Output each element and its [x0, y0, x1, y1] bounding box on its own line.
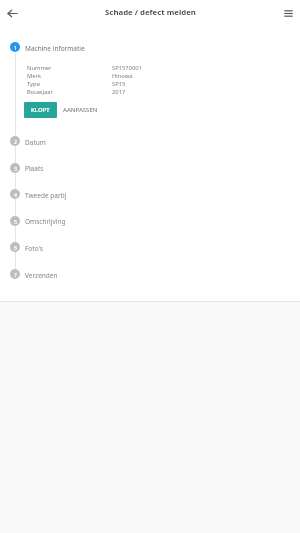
button[interactable]: Menu: [276, 1, 300, 25]
button[interactable]: [0, 132, 300, 150]
staticText: 7: [14, 271, 17, 278]
staticText: Nummer: [27, 64, 112, 72]
staticText: Plaats: [25, 164, 44, 173]
staticText: 2017: [112, 88, 126, 96]
staticText: 6: [14, 244, 17, 251]
staticText: Bouwjaar: [27, 88, 112, 96]
staticText: Hinowa: [112, 72, 133, 80]
staticText: Foto's: [25, 244, 43, 253]
button[interactable]: [0, 212, 300, 230]
staticText: 4: [14, 191, 17, 198]
button[interactable]: [0, 159, 300, 177]
staticText: Machine informatie: [25, 44, 85, 53]
staticText: Schade / defect melden: [105, 7, 196, 18]
staticText: 2: [14, 138, 17, 145]
button[interactable]: Back: [0, 1, 24, 25]
staticText: Tweede partij: [25, 191, 67, 200]
staticText: 3: [14, 165, 17, 172]
staticText: SP15: [112, 80, 126, 88]
button[interactable]: AANPASSEN: [59, 102, 102, 118]
staticText: Merk: [27, 72, 112, 80]
staticText: SP1570001: [112, 64, 142, 72]
staticText: 5: [14, 218, 17, 225]
staticText: KLOPT: [31, 106, 50, 114]
button[interactable]: [0, 185, 300, 203]
staticText: Datum: [25, 138, 46, 147]
staticText: 1: [14, 44, 17, 51]
staticText: Type: [27, 80, 112, 88]
staticText: Verzenden: [25, 271, 58, 280]
button[interactable]: [0, 238, 300, 256]
button[interactable]: KLOPT: [24, 102, 57, 118]
staticText: AANPASSEN: [63, 106, 98, 114]
staticText: Omschrijving: [25, 217, 66, 226]
button[interactable]: [0, 265, 300, 283]
